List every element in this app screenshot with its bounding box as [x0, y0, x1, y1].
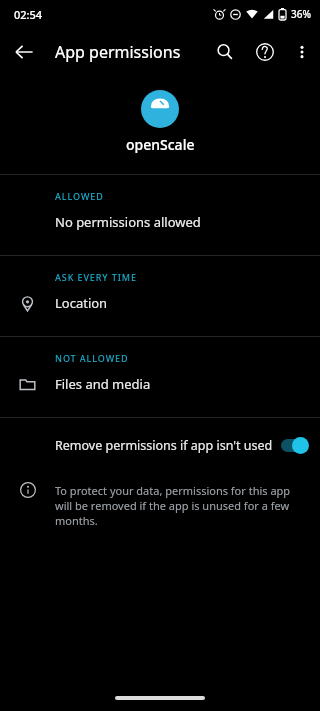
staticText: No permissions allowed [55, 213, 201, 231]
button[interactable]: No permissions allowed [0, 202, 320, 242]
button[interactable]: More options [285, 35, 319, 69]
button[interactable]: Search [205, 32, 245, 72]
staticText: NOT ALLOWED [55, 352, 129, 364]
button[interactable]: Help [245, 32, 285, 72]
staticText: Location [55, 294, 108, 312]
button[interactable]: Remove permissions if app isn't used [0, 418, 320, 472]
staticText: openScale [126, 135, 195, 154]
staticText: Files and media [55, 375, 151, 393]
staticText: To protect your data, permissions for th… [55, 483, 307, 528]
staticText: ASK EVERY TIME [55, 271, 137, 283]
button[interactable]: Files and media [0, 364, 320, 404]
staticText: ALLOWED [55, 190, 104, 202]
button[interactable]: Remove permissions toggle [280, 434, 310, 456]
staticText: 02:54 [14, 7, 43, 22]
button[interactable]: Back [4, 32, 44, 72]
staticText: 36% [291, 7, 311, 21]
button[interactable]: Location [0, 283, 320, 323]
staticText: App permissions [55, 41, 181, 63]
staticText: Remove permissions if app isn't used [55, 437, 280, 454]
